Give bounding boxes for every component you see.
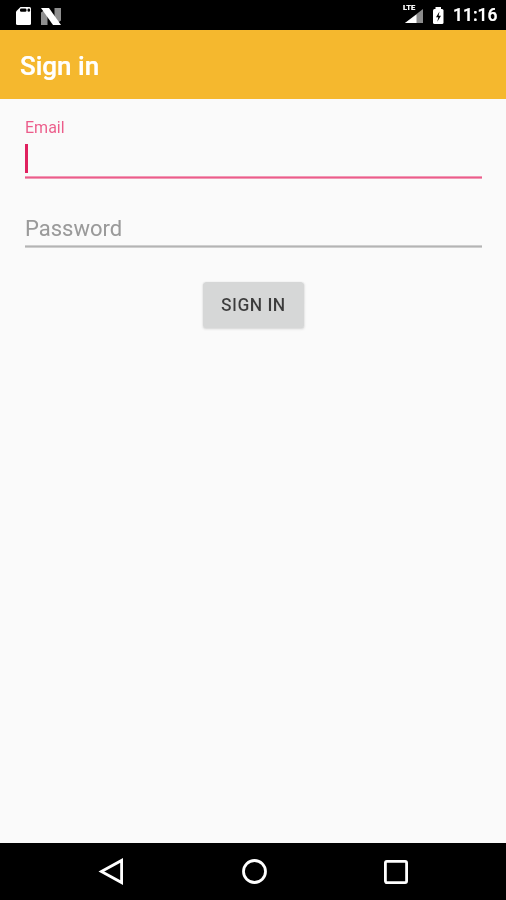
staticText: Email [25, 118, 65, 137]
staticText: LTE [403, 3, 416, 12]
button[interactable]: Back [73, 843, 149, 900]
button[interactable]: SIGN IN [203, 282, 304, 328]
staticText: 11:16 [453, 5, 498, 26]
staticText: SIGN IN [221, 295, 286, 316]
button[interactable]: Recent apps [358, 843, 434, 900]
staticText: Sign in [20, 51, 100, 81]
staticText: Password [25, 216, 123, 242]
button[interactable]: Password [0, 203, 506, 267]
button[interactable]: Email [0, 103, 506, 183]
button[interactable]: Home [216, 843, 292, 900]
